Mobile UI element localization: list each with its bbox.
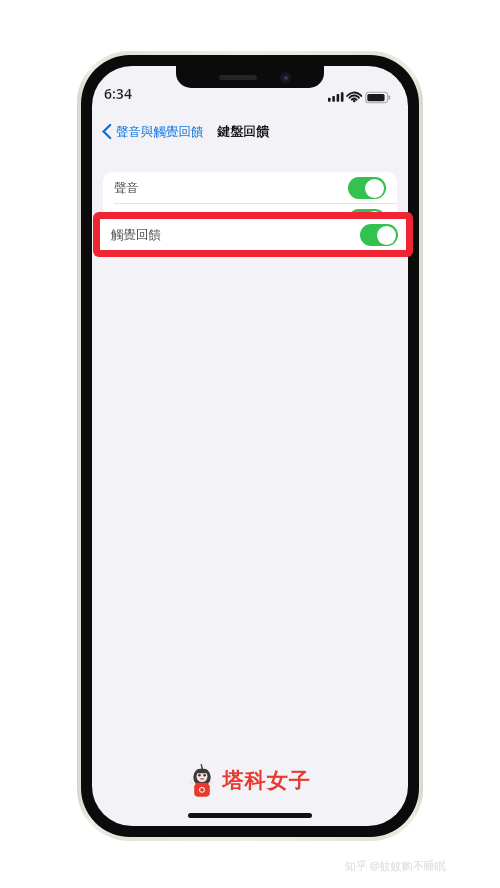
staticText: 觸覺回饋 [114,212,164,228]
staticText: 鍵盤回饋 [217,123,269,139]
staticText: 6:34 [104,84,132,103]
staticText: 聲音 [114,180,139,196]
button[interactable]: 觸覺回饋 [100,219,406,250]
button[interactable]: 聲音 [103,172,397,203]
button[interactable]: 開啟 [360,224,398,246]
staticText: 觸覺回饋 [111,227,161,243]
button[interactable]: 開啟 [348,177,386,199]
staticText: 聲音與觸覺回饋 [116,124,204,140]
button[interactable]: 觸覺回饋 [103,204,397,235]
button[interactable]: 返回 聲音與觸覺回饋 [98,120,208,143]
button[interactable]: 開啟 [348,209,386,231]
staticText: 塔科女子 [222,768,311,794]
staticText: 知乎 @蚊蚊购不睡眠 [345,858,446,873]
